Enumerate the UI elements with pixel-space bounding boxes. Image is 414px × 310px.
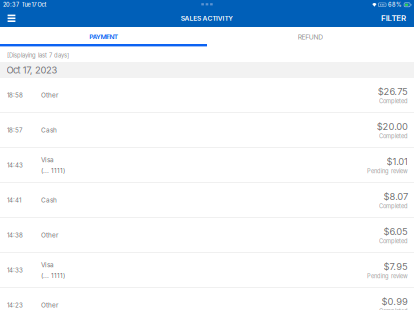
staticText: REFUND	[298, 33, 323, 41]
staticText: $6.05	[384, 226, 408, 237]
staticText: 14:41	[7, 196, 21, 204]
staticText: [Displaying last 7 days]	[7, 52, 69, 59]
staticText: Other	[41, 301, 58, 309]
staticText: SALES ACTIVITY	[181, 14, 233, 22]
staticText: Pending review	[367, 168, 408, 174]
staticText: 20:37	[3, 1, 19, 8]
staticText: 18:57	[7, 126, 22, 134]
button[interactable]: FILTER	[381, 10, 414, 27]
staticText: $26.75	[378, 86, 408, 97]
staticText: (... 1111)	[41, 272, 65, 279]
staticText: Completed	[379, 133, 408, 139]
staticText: Other	[41, 91, 58, 99]
staticText: Other	[41, 231, 58, 239]
button[interactable]: 14:38	[0, 218, 414, 253]
button[interactable]: 18:57	[0, 113, 414, 148]
staticText: Cash	[41, 196, 57, 204]
staticText: Cash	[41, 126, 57, 134]
button[interactable]: 14:23	[0, 288, 414, 310]
staticText: Visa	[41, 261, 54, 269]
staticText: 14:43	[7, 161, 23, 169]
staticText: PAYMENT	[89, 33, 118, 41]
button[interactable]: 14:41	[0, 183, 414, 218]
staticText: 14:38	[7, 231, 23, 239]
staticText: Completed	[379, 238, 408, 244]
staticText: Pending review	[367, 273, 408, 279]
staticText: Completed	[379, 98, 408, 104]
staticText: $8.07	[384, 191, 408, 202]
staticText: 14:33	[7, 266, 23, 274]
button[interactable]: Menu	[0, 10, 23, 27]
button[interactable]: 14:43	[0, 148, 414, 183]
staticText: Oct 17, 2023	[6, 64, 57, 76]
button[interactable]: 14:33	[0, 253, 414, 288]
staticText: $0.99	[382, 296, 408, 307]
staticText: $20.00	[377, 121, 408, 132]
staticText: $7.95	[384, 261, 408, 272]
staticText: FILTER	[381, 13, 406, 23]
staticText: 68%	[388, 1, 402, 8]
staticText: $1.01	[387, 156, 408, 167]
staticText: Completed	[379, 308, 408, 310]
staticText: 14:23	[7, 301, 23, 309]
staticText: Completed	[379, 203, 408, 209]
staticText: Visa	[41, 156, 54, 164]
staticText: Tue 17 Oct	[21, 1, 46, 8]
button[interactable]: REFUND	[207, 27, 414, 44]
staticText: (... 1111)	[41, 167, 65, 174]
staticText: 18:58	[7, 91, 23, 99]
button[interactable]: PAYMENT	[0, 27, 207, 44]
button[interactable]: 18:58	[0, 78, 414, 113]
